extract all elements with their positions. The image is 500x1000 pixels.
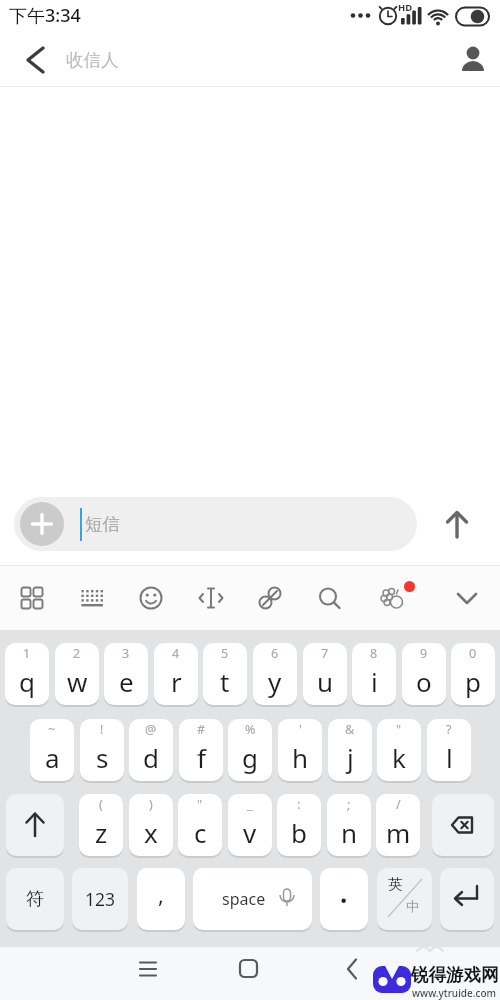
button[interactable]	[14, 497, 417, 551]
staticText: @	[145, 721, 157, 738]
staticText: n	[341, 815, 358, 850]
button[interactable]	[189, 574, 233, 622]
button[interactable]: ?	[427, 719, 471, 781]
button[interactable]	[452, 40, 492, 80]
button[interactable]: "	[178, 794, 222, 856]
staticText: 下午3:34	[9, 3, 81, 28]
staticText: 4	[172, 645, 180, 662]
button[interactable]: !	[80, 719, 124, 781]
staticText: 1	[23, 645, 31, 662]
button[interactable]	[129, 574, 173, 622]
staticText: q	[19, 664, 35, 699]
button[interactable]: &	[328, 719, 372, 781]
staticText: 短信	[85, 513, 120, 535]
button[interactable]	[433, 499, 481, 547]
button[interactable]: 123	[72, 868, 128, 930]
staticText: 123	[85, 887, 116, 911]
staticText: www.ytruide.com	[412, 986, 496, 1000]
staticText: ,	[158, 879, 164, 909]
button[interactable]: %	[228, 719, 272, 781]
button[interactable]: ;	[327, 794, 371, 856]
staticText: 5	[221, 645, 229, 662]
button[interactable]: 7	[303, 643, 347, 705]
staticText: 6	[271, 645, 279, 662]
button[interactable]: )	[129, 794, 173, 856]
button[interactable]	[20, 502, 64, 546]
button[interactable]	[248, 574, 292, 622]
staticText: (	[99, 796, 103, 813]
button[interactable]: 6	[253, 643, 297, 705]
button[interactable]	[332, 947, 376, 991]
button[interactable]: ,	[137, 868, 185, 930]
button[interactable]: 符	[6, 868, 64, 930]
button[interactable]: @	[129, 719, 173, 781]
staticText: #	[197, 721, 206, 738]
button[interactable]	[10, 574, 54, 622]
staticText: t	[220, 664, 230, 699]
staticText: x	[144, 815, 158, 850]
staticText: _	[247, 796, 253, 813]
button[interactable]	[12, 38, 60, 82]
button[interactable]: '	[278, 719, 322, 781]
staticText: ;	[347, 796, 351, 813]
staticText: 9	[420, 645, 428, 662]
staticText: 0	[469, 645, 477, 662]
button[interactable]: 8	[352, 643, 396, 705]
button[interactable]	[432, 794, 494, 856]
button[interactable]: _	[228, 794, 272, 856]
staticText: "	[396, 721, 402, 738]
staticText: "	[197, 796, 203, 813]
button[interactable]	[6, 794, 64, 856]
button[interactable]: #	[179, 719, 223, 781]
staticText: g	[242, 740, 258, 775]
staticText: h	[292, 740, 309, 775]
button[interactable]	[308, 575, 352, 623]
button[interactable]: 1	[5, 643, 49, 705]
button[interactable]: space	[193, 868, 312, 930]
button[interactable]: 5	[203, 643, 247, 705]
staticText: 锐得游戏网	[411, 964, 499, 986]
button[interactable]	[69, 574, 113, 622]
button[interactable]	[440, 868, 494, 930]
staticText: !	[100, 721, 104, 738]
button[interactable]	[126, 947, 170, 991]
staticText: ~	[48, 721, 56, 738]
button[interactable]: "	[377, 719, 421, 781]
button[interactable]: 0	[451, 643, 495, 705]
staticText: m	[386, 815, 411, 850]
button[interactable]: /	[376, 794, 420, 856]
button[interactable]: 4	[154, 643, 198, 705]
staticText: 7	[321, 645, 329, 662]
staticText: a	[45, 740, 60, 775]
staticText: )	[149, 796, 153, 813]
button[interactable]	[368, 574, 418, 624]
button[interactable]: 3	[104, 643, 148, 705]
staticText: z	[95, 815, 108, 850]
staticText: 英	[388, 875, 403, 893]
staticText: i	[371, 664, 378, 699]
button[interactable]: ·	[320, 868, 368, 930]
staticText: e	[119, 664, 134, 699]
staticText: space	[222, 888, 266, 910]
button[interactable]: (	[79, 794, 123, 856]
staticText: %	[245, 721, 256, 738]
button[interactable]: :	[277, 794, 321, 856]
staticText: 收信人	[66, 49, 119, 71]
button[interactable]: 英	[377, 868, 432, 930]
staticText: 8	[370, 645, 378, 662]
button[interactable]	[226, 947, 270, 991]
staticText: &	[345, 721, 355, 738]
staticText: HD	[398, 1, 413, 14]
button[interactable]: ~	[30, 719, 74, 781]
staticText: b	[291, 815, 307, 850]
staticText: d	[143, 740, 159, 775]
staticText: :	[297, 796, 301, 813]
staticText: 符	[26, 888, 44, 911]
button[interactable]: 2	[55, 643, 99, 705]
button[interactable]	[445, 574, 489, 622]
staticText: w	[67, 664, 88, 699]
staticText: r	[171, 664, 182, 699]
staticText: ?	[446, 721, 452, 738]
staticText: y	[268, 664, 282, 699]
button[interactable]: 9	[402, 643, 446, 705]
